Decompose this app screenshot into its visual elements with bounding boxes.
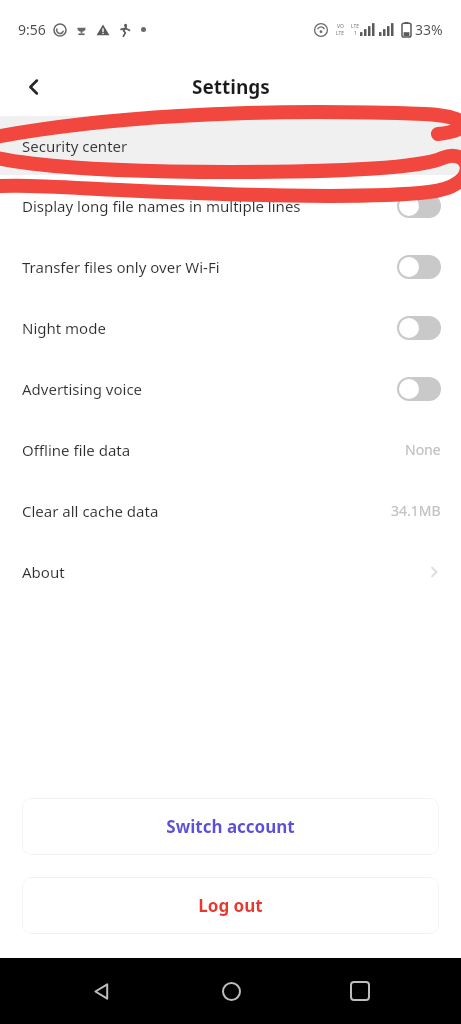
staticText: Clear all cache data	[22, 501, 391, 521]
button[interactable]: Display long file names in multiple line…	[0, 175, 461, 236]
staticText: 34.1MB	[391, 501, 441, 520]
staticText: Advertising voice	[22, 379, 397, 399]
button[interactable]: Clear all cache data	[0, 480, 461, 541]
button[interactable]: Back	[73, 963, 129, 1019]
button[interactable]: Log out	[22, 877, 439, 934]
staticText: Log out	[198, 894, 263, 917]
button[interactable]	[397, 255, 441, 279]
staticText: Display long file names in multiple line…	[22, 196, 397, 216]
button[interactable]: Security center	[0, 116, 461, 175]
button[interactable]	[397, 316, 441, 340]
staticText: LTE	[336, 30, 345, 37]
staticText: 33%	[415, 20, 443, 39]
button[interactable]	[397, 194, 441, 218]
button[interactable]: Night mode	[0, 297, 461, 358]
staticText: Night mode	[22, 318, 397, 338]
staticText: About	[22, 562, 427, 582]
staticText: Switch account	[166, 815, 295, 838]
staticText: None	[405, 440, 441, 459]
button[interactable]: Switch account	[22, 798, 439, 855]
staticText: Security center	[22, 136, 441, 156]
button[interactable]: Recent apps	[332, 963, 388, 1019]
staticText: VO	[337, 23, 344, 30]
staticText: Offline file data	[22, 440, 405, 460]
button[interactable]: About	[0, 541, 461, 602]
button[interactable]: Transfer files only over Wi-Fi	[0, 236, 461, 297]
staticText: 1	[354, 30, 357, 37]
staticText: Settings	[192, 74, 270, 100]
button[interactable]	[397, 377, 441, 401]
staticText: 9:56	[18, 20, 46, 39]
button[interactable]: Advertising voice	[0, 358, 461, 419]
button[interactable]: Offline file data	[0, 419, 461, 480]
button[interactable]: Back	[10, 63, 58, 111]
staticText: LTE	[351, 23, 360, 30]
staticText: Transfer files only over Wi-Fi	[22, 257, 397, 277]
button[interactable]: Home	[203, 963, 259, 1019]
